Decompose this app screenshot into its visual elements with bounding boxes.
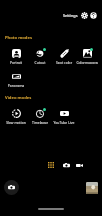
staticText: Portrait (4, 60, 28, 64)
button[interactable]: Help (89, 11, 98, 20)
button[interactable]: Panorama (4, 70, 28, 87)
staticText: Colormapgraph (76, 60, 98, 64)
button[interactable]: Switch camera (4, 180, 19, 195)
staticText: Slow motion (4, 120, 28, 124)
button[interactable]: Slow motion (4, 107, 28, 124)
button[interactable]: Photo (60, 159, 72, 171)
button[interactable]: Settings (80, 11, 89, 20)
staticText: Settings (63, 13, 78, 18)
staticText: Timelapse (28, 120, 52, 124)
button[interactable]: Colormapgraph (76, 47, 98, 64)
staticText: YouTube Live (52, 120, 76, 124)
staticText: Photo modes (5, 35, 32, 41)
staticText: Video modes (5, 95, 32, 101)
button[interactable]: Portrait (4, 47, 28, 64)
button[interactable]: Video (73, 159, 85, 171)
button[interactable]: Spot color (52, 47, 76, 64)
button[interactable]: Timelapse (28, 107, 52, 124)
button[interactable]: YouTube Live (52, 107, 76, 124)
button[interactable]: Gallery (86, 182, 98, 194)
button[interactable]: More modes (45, 159, 57, 171)
staticText: Cutout (28, 60, 52, 64)
staticText: Panorama (4, 83, 28, 87)
button[interactable]: Cutout (28, 47, 52, 64)
staticText: Spot color (52, 60, 76, 64)
